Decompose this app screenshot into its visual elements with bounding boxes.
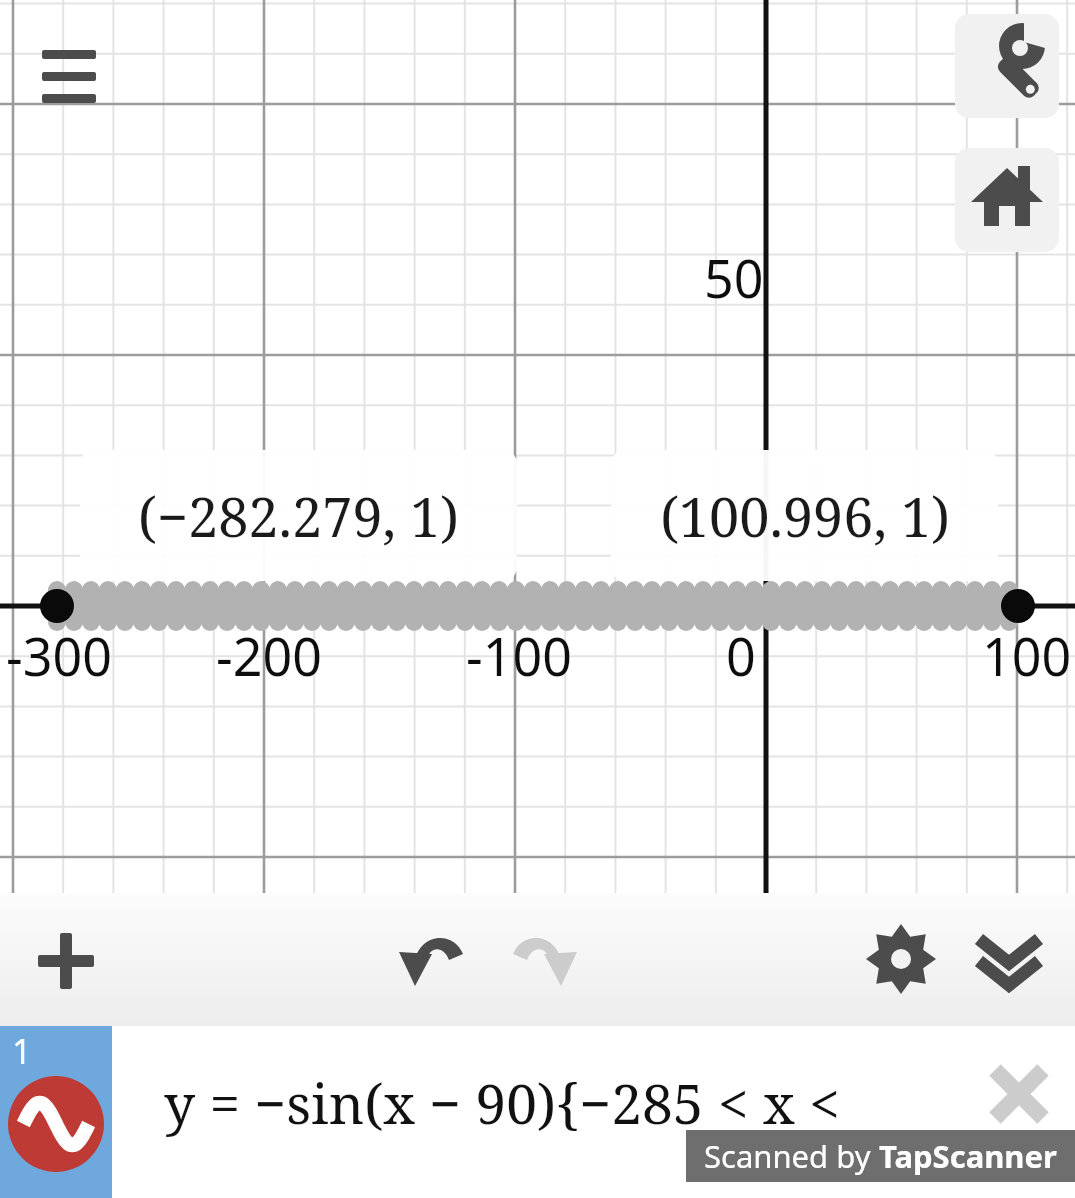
button[interactable]: Graph settings: [858, 915, 944, 1003]
staticText: -300: [6, 620, 112, 691]
button[interactable]: Delete expression: [977, 1052, 1061, 1136]
staticText: -200: [216, 620, 322, 691]
button[interactable]: Home: [955, 148, 1059, 252]
staticText: 50: [704, 242, 764, 313]
staticText: 1: [12, 1028, 32, 1074]
button[interactable]: (100.996, 1): [611, 450, 998, 581]
button[interactable]: Add expression: [22, 921, 110, 1001]
staticText: y = −sin(x − 90){−285 < x <: [164, 1065, 840, 1140]
button[interactable]: Undo: [388, 920, 478, 1000]
button[interactable]: Redo: [498, 920, 588, 1000]
staticText: 0: [726, 620, 756, 691]
staticText: Scanned by: [704, 1135, 879, 1177]
staticText: TapScanner: [879, 1135, 1057, 1177]
button[interactable]: Tools: [955, 14, 1059, 118]
button[interactable]: (−282.279, 1): [80, 450, 517, 581]
staticText: (−282.279, 1): [138, 479, 459, 553]
staticText: 100: [982, 620, 1072, 691]
button[interactable]: Collapse keypad: [966, 915, 1052, 1003]
staticText: (100.996, 1): [660, 479, 950, 553]
staticText: -100: [466, 620, 572, 691]
button[interactable]: Menu: [28, 36, 110, 104]
button[interactable]: 1: [0, 1026, 112, 1198]
